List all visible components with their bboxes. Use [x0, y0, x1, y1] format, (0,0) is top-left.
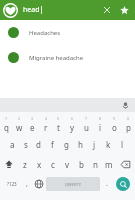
button[interactable]: n	[88, 154, 102, 174]
button[interactable]: m	[102, 154, 116, 174]
staticText: 9	[113, 116, 116, 121]
staticText: z	[23, 159, 27, 170]
button[interactable]: 8	[93, 114, 107, 134]
button[interactable]: 2	[13, 114, 26, 134]
button[interactable]: b	[74, 154, 88, 174]
button[interactable]: Headaches	[0, 20, 135, 45]
staticText: 2	[18, 116, 21, 121]
staticText: head	[23, 5, 40, 15]
staticText: u	[84, 122, 89, 133]
staticText: 1	[5, 116, 8, 121]
button[interactable]: 3	[26, 114, 39, 134]
button[interactable]: .	[101, 174, 112, 194]
staticText: QWERTY	[65, 182, 82, 187]
staticText: .	[106, 179, 108, 189]
staticText: o	[112, 122, 117, 133]
button[interactable]: App logo	[3, 3, 18, 18]
staticText: l	[121, 139, 124, 150]
staticText: ,	[26, 179, 28, 189]
staticText: 6	[71, 116, 74, 121]
button[interactable]: g	[59, 134, 73, 154]
button[interactable]: h	[73, 134, 87, 154]
staticText: 7	[85, 116, 88, 121]
button[interactable]: Clear query	[100, 3, 114, 17]
staticText: q	[4, 122, 9, 133]
staticText: s	[24, 139, 28, 150]
button[interactable]: x	[32, 154, 46, 174]
button[interactable]: Search	[112, 174, 133, 194]
staticText: j	[93, 139, 96, 150]
staticText: n	[93, 159, 98, 170]
button[interactable]: Shift	[0, 154, 18, 174]
staticText: d	[36, 139, 41, 150]
staticText: i	[99, 122, 102, 133]
staticText: h	[78, 139, 83, 150]
button[interactable]: v	[60, 154, 74, 174]
button[interactable]: 6	[65, 114, 79, 134]
staticText: Migraine headache	[29, 54, 84, 62]
button[interactable]: c	[46, 154, 60, 174]
button[interactable]: j	[87, 134, 101, 154]
button[interactable]: Voice input	[119, 99, 131, 111]
button[interactable]: Backspace	[116, 154, 135, 174]
button[interactable]: l	[115, 134, 129, 154]
button[interactable]: 5	[52, 114, 65, 134]
staticText: k	[106, 139, 111, 150]
staticText: w	[16, 122, 23, 133]
staticText: Headaches	[29, 29, 61, 37]
staticText: b	[79, 159, 84, 170]
staticText: e	[30, 122, 35, 133]
staticText: 5	[57, 116, 60, 121]
button[interactable]: 4	[39, 114, 52, 134]
staticText: t	[57, 122, 60, 133]
button[interactable]: 9	[107, 114, 121, 134]
staticText: 8	[99, 116, 102, 121]
button[interactable]: s	[19, 134, 32, 154]
button[interactable]: QWERTY	[46, 177, 100, 191]
staticText: r	[44, 122, 48, 133]
staticText: ?123	[7, 181, 17, 187]
button[interactable]: Change language	[32, 174, 45, 194]
staticText: f	[51, 139, 54, 150]
button[interactable]: k	[101, 134, 115, 154]
button[interactable]: f	[45, 134, 59, 154]
staticText: x	[37, 159, 42, 170]
staticText: g	[64, 139, 69, 150]
staticText: y	[70, 122, 75, 133]
staticText: p	[126, 122, 131, 133]
button[interactable]: z	[18, 154, 32, 174]
button[interactable]: Favourite	[117, 3, 131, 17]
button[interactable]: d	[32, 134, 45, 154]
staticText: c	[51, 159, 55, 170]
staticText: 3	[31, 116, 34, 121]
staticText: m	[105, 159, 113, 170]
button[interactable]: ,	[21, 174, 32, 194]
staticText: v	[65, 159, 70, 170]
button[interactable]: 0	[121, 114, 135, 134]
button[interactable]: Migraine headache	[0, 45, 135, 70]
button[interactable]: 1	[0, 114, 13, 134]
staticText: a	[10, 139, 15, 150]
staticText: 0	[127, 116, 130, 121]
button[interactable]: 7	[79, 114, 93, 134]
button[interactable]: ?123	[2, 174, 21, 194]
staticText: 4	[45, 116, 48, 121]
button[interactable]: head	[23, 5, 42, 15]
button[interactable]: a	[6, 134, 19, 154]
